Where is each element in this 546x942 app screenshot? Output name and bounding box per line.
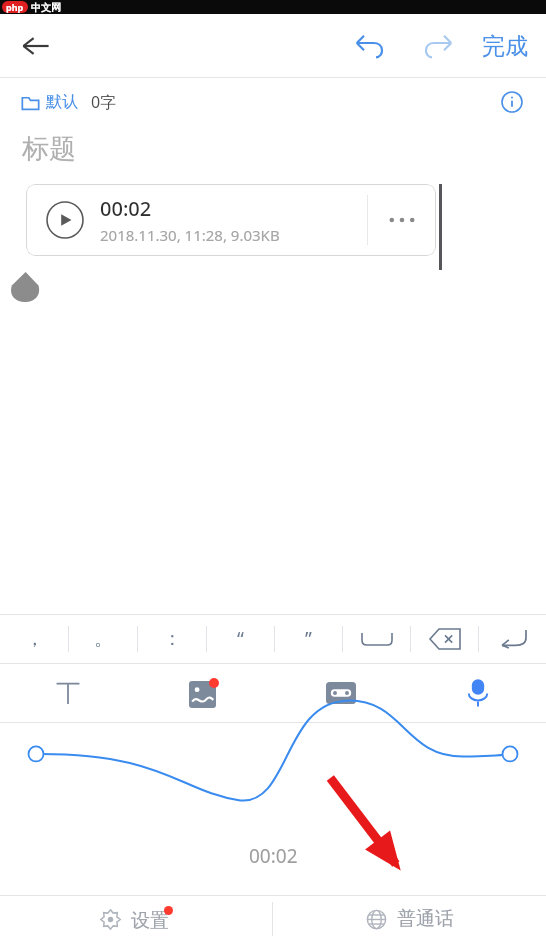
button[interactable]: Text [0,664,136,722]
button[interactable]: Recording [272,664,409,722]
staticText: 中文网 [31,1,61,14]
staticText: 设置 [131,909,169,933]
button[interactable]: Space [343,615,410,663]
staticText: 标题 [22,132,76,166]
button[interactable]: Enter [479,615,546,663]
button[interactable]: Backspace [411,615,478,663]
staticText: 00:02 [100,195,152,222]
button[interactable]: Info [490,80,534,124]
button[interactable]: Back [8,18,64,74]
staticText: ， [25,627,44,651]
staticText: ： [163,627,182,651]
button[interactable]: ， [0,615,68,663]
button[interactable]: 默认 [22,91,117,113]
staticText: 完成 [482,32,528,61]
button[interactable]: “ [207,615,274,663]
button[interactable]: ” [275,615,342,663]
button[interactable]: Undo [342,18,398,74]
staticText: 2018.11.30, 11:28, 9.03KB [100,225,280,245]
staticText: php [6,1,24,13]
button[interactable]: 。 [69,615,137,663]
staticText: 普通话 [397,907,454,931]
staticText: 00:02 [249,843,298,869]
button[interactable]: 完成 [474,22,536,71]
button[interactable]: More options [368,184,436,256]
staticText: 。 [94,627,113,651]
button[interactable]: Insert image [136,664,272,722]
staticText: 0字 [91,91,117,113]
staticText: ” [305,626,312,652]
button[interactable]: Voice input [409,664,546,722]
button[interactable]: 00:02 [26,184,436,256]
button[interactable]: 设置 [0,896,272,942]
staticText: “ [237,626,244,652]
button[interactable]: ： [138,615,206,663]
staticText: 默认 [46,92,78,112]
button[interactable]: 普通话 [273,896,546,942]
button[interactable]: Redo [410,18,466,74]
